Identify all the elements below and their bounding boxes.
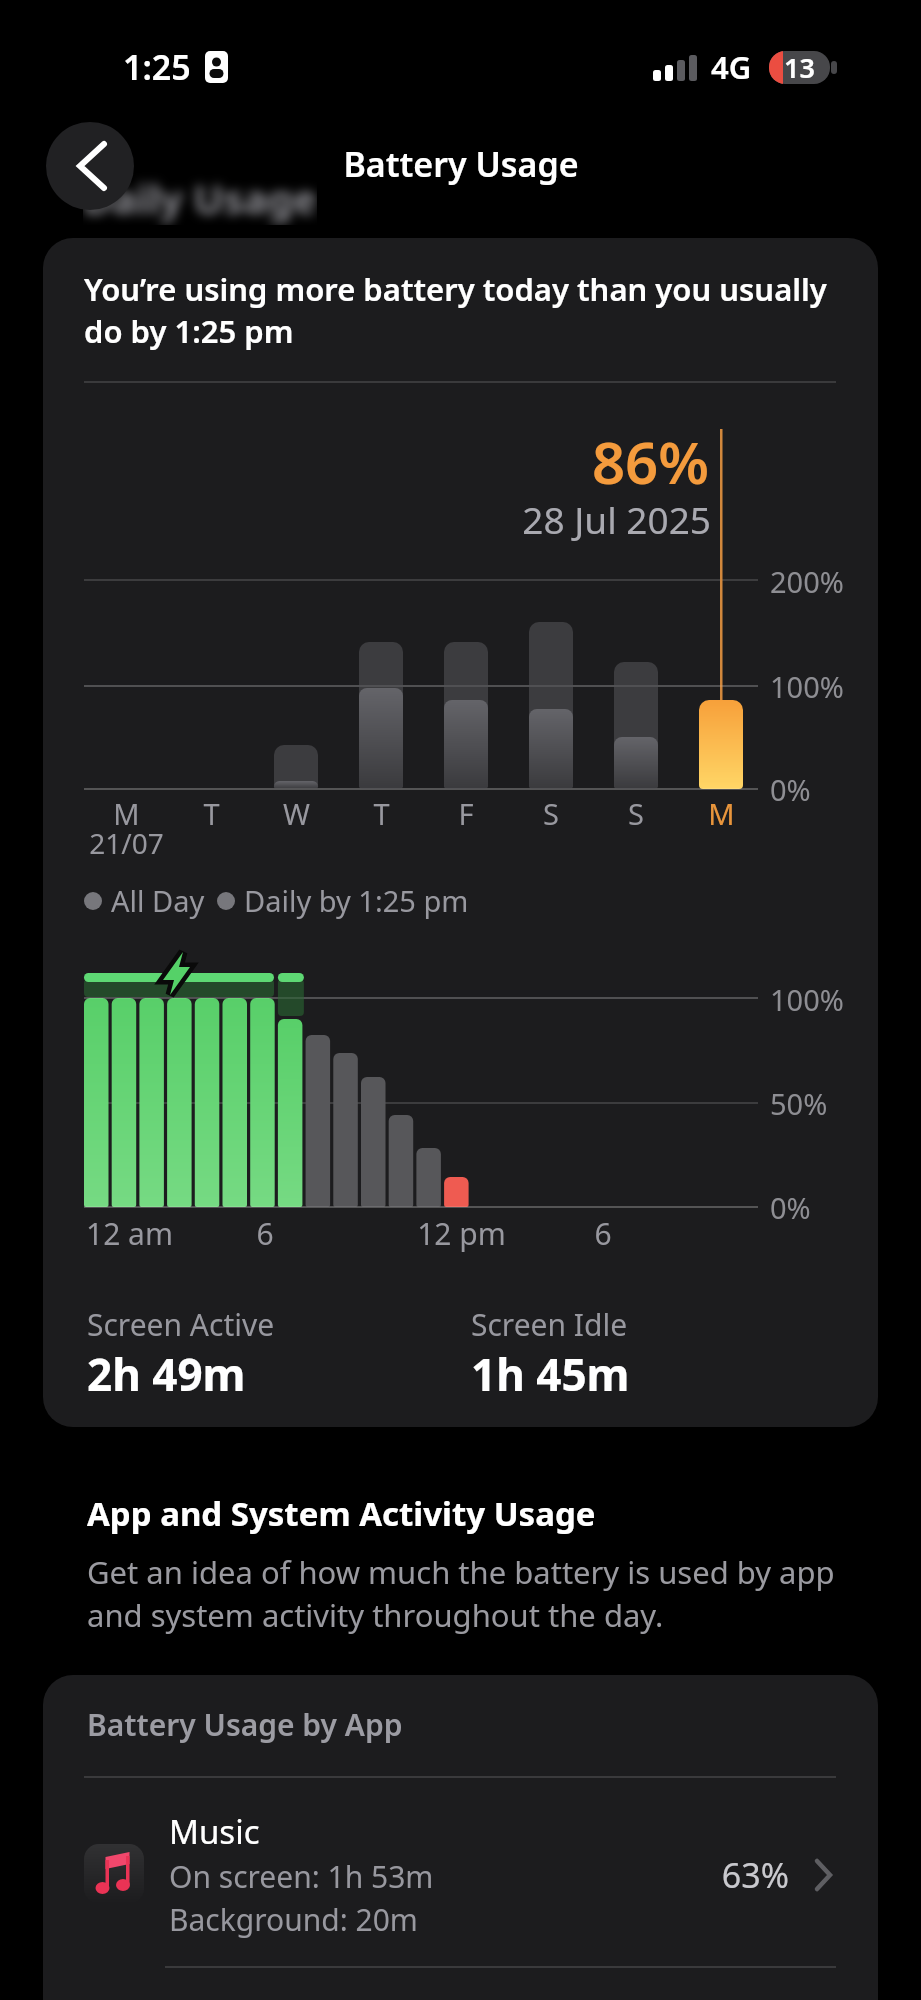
staticText: 6: [594, 1213, 612, 1254]
staticText: 28 Jul 2025: [522, 494, 711, 544]
button[interactable]: [46, 122, 134, 210]
staticText: 1h 45m: [471, 1344, 630, 1404]
staticText: 6: [256, 1213, 274, 1254]
staticText: Get an idea of how much the battery is u…: [87, 1551, 835, 1636]
staticText: Daily by 1:25 pm: [244, 881, 469, 920]
staticText: W: [283, 794, 310, 833]
staticText: Screen Active: [87, 1304, 275, 1345]
staticText: 200%: [770, 562, 844, 601]
staticText: F: [458, 794, 474, 833]
staticText: T: [203, 794, 220, 833]
staticText: M: [113, 794, 140, 833]
staticText: Music: [169, 1809, 260, 1854]
staticText: 21/07: [89, 824, 164, 862]
staticText: All Day: [111, 881, 205, 920]
staticText: You’re using more battery today than you…: [84, 268, 827, 352]
staticText: T: [373, 794, 390, 833]
staticText: Background: 20m: [169, 1899, 418, 1940]
staticText: On screen: 1h 53m: [169, 1856, 434, 1897]
staticText: 0%: [770, 1188, 811, 1227]
staticText: Daily Usage: [83, 171, 317, 225]
staticText: Screen Idle: [471, 1304, 628, 1345]
staticText: 4G: [711, 46, 752, 88]
staticText: 100%: [770, 667, 844, 706]
staticText: 86%: [591, 422, 709, 501]
staticText: M: [708, 794, 735, 833]
staticText: 1:25: [123, 44, 191, 90]
staticText: 50%: [770, 1084, 828, 1123]
staticText: Battery Usage: [343, 141, 579, 187]
staticText: Battery Usage by App: [87, 1704, 403, 1745]
staticText: S: [543, 794, 559, 833]
staticText: 12 pm: [417, 1213, 506, 1254]
staticText: 2h 49m: [87, 1344, 246, 1404]
staticText: 63%: [721, 1852, 789, 1898]
staticText: S: [628, 794, 644, 833]
staticText: App and System Activity Usage: [87, 1491, 596, 1536]
staticText: 13: [784, 49, 815, 86]
staticText: 0%: [770, 770, 811, 809]
button[interactable]: [43, 1800, 878, 1966]
staticText: 100%: [770, 980, 844, 1019]
staticText: 12 am: [86, 1213, 173, 1254]
